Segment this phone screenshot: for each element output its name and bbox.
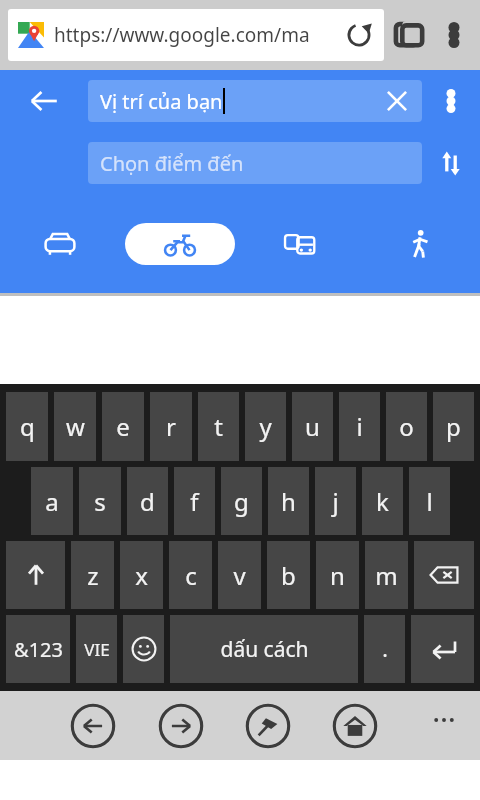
staticText: y xyxy=(259,410,272,443)
staticText: a xyxy=(45,485,59,518)
button[interactable]: VIE xyxy=(76,615,117,683)
staticText: l xyxy=(426,485,433,518)
button[interactable]: More options xyxy=(422,70,480,132)
staticText: w xyxy=(66,410,85,443)
button[interactable]: s xyxy=(79,467,121,535)
button[interactable]: z xyxy=(71,541,114,609)
button[interactable]: Enter xyxy=(411,615,474,683)
staticText: z xyxy=(87,559,99,592)
staticText: s xyxy=(94,485,106,518)
button[interactable]: u xyxy=(292,392,333,461)
staticText: o xyxy=(399,410,414,443)
button[interactable]: i xyxy=(339,392,380,461)
staticText: x xyxy=(135,559,148,592)
button[interactable]: f xyxy=(174,467,215,535)
button[interactable]: y xyxy=(245,392,286,461)
button[interactable]: Swap xyxy=(422,132,480,194)
button[interactable]: n xyxy=(316,541,359,609)
button[interactable]: g xyxy=(221,467,262,535)
button[interactable]: v xyxy=(218,541,261,609)
staticText: r xyxy=(166,410,176,443)
staticText: m xyxy=(375,559,398,592)
button[interactable]: j xyxy=(315,467,356,535)
button[interactable]: Back xyxy=(70,703,116,749)
staticText: e xyxy=(116,410,130,443)
button[interactable]: d xyxy=(127,467,168,535)
staticText: Vị trí của bạn xyxy=(100,88,223,115)
staticText: VIE xyxy=(84,638,110,661)
button[interactable]: Emoji xyxy=(123,615,164,683)
staticText: q xyxy=(20,410,35,443)
button[interactable]: a xyxy=(31,467,73,535)
staticText: i xyxy=(356,410,363,443)
button[interactable]: Travel mode xyxy=(360,194,480,293)
staticText: d xyxy=(140,485,155,518)
button[interactable]: &123 xyxy=(6,615,70,683)
staticText: c xyxy=(185,559,197,592)
button[interactable]: Shift xyxy=(6,541,65,609)
staticText: g xyxy=(234,485,249,518)
button[interactable]: l xyxy=(409,467,450,535)
button[interactable]: Motorcycle xyxy=(125,223,235,265)
staticText: dấu cách xyxy=(220,635,309,664)
button[interactable]: t xyxy=(198,392,239,461)
button[interactable]: b xyxy=(267,541,310,609)
staticText: t xyxy=(214,410,223,443)
staticText: Chọn điểm đến xyxy=(100,150,244,177)
button[interactable]: c xyxy=(169,541,212,609)
button[interactable]: https://www.google.com/ma xyxy=(8,9,384,61)
button[interactable]: w xyxy=(54,392,96,461)
staticText: . xyxy=(382,635,388,664)
button[interactable]: Forward xyxy=(158,703,204,749)
button[interactable]: More xyxy=(424,706,464,746)
button[interactable]: q xyxy=(6,392,48,461)
button[interactable]: h xyxy=(268,467,309,535)
staticText: h xyxy=(281,485,296,518)
button[interactable]: e xyxy=(102,392,144,461)
staticText: v xyxy=(233,559,246,592)
staticText: n xyxy=(330,559,345,592)
button[interactable]: Travel mode xyxy=(240,194,360,293)
button[interactable]: Travel mode xyxy=(0,194,120,293)
staticText: https://www.google.com/ma xyxy=(54,22,310,48)
button[interactable]: Home xyxy=(332,703,378,749)
button[interactable]: Back xyxy=(0,70,88,132)
staticText: u xyxy=(305,410,320,443)
staticText: f xyxy=(190,485,199,518)
staticText: b xyxy=(281,559,296,592)
button[interactable]: x xyxy=(120,541,163,609)
button[interactable]: dấu cách xyxy=(170,615,358,683)
button[interactable]: Reload xyxy=(344,20,374,50)
button[interactable]: Bookmark xyxy=(245,703,291,749)
staticText: j xyxy=(332,485,339,518)
button[interactable]: k xyxy=(362,467,403,535)
staticText: k xyxy=(376,485,389,518)
button[interactable]: o xyxy=(386,392,427,461)
button[interactable]: Chọn điểm đến xyxy=(88,142,422,184)
button[interactable]: Backspace xyxy=(414,541,474,609)
button[interactable]: Menu xyxy=(436,0,472,70)
button[interactable]: p xyxy=(433,392,474,461)
button[interactable]: Vị trí của bạn xyxy=(88,80,422,122)
button[interactable]: . xyxy=(364,615,405,683)
staticText: p xyxy=(446,410,461,443)
button[interactable]: m xyxy=(365,541,408,609)
button[interactable]: r xyxy=(150,392,192,461)
staticText: &123 xyxy=(14,636,63,663)
button[interactable]: Clear xyxy=(380,84,414,118)
button[interactable]: Tabs xyxy=(384,0,436,70)
